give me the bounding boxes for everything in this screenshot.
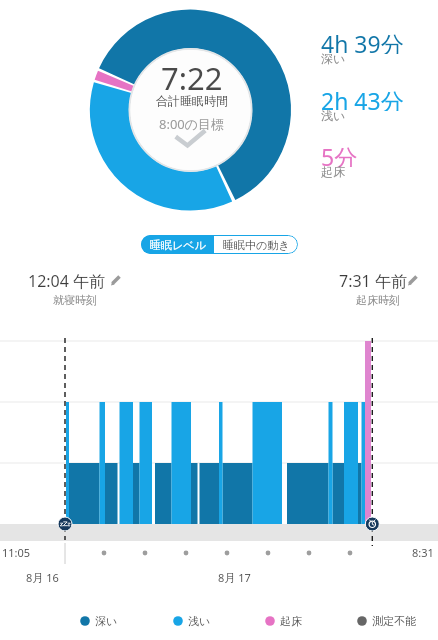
button[interactable] (335, 266, 425, 290)
staticText: 深い (321, 51, 346, 65)
staticText: 2h 43分 (321, 85, 404, 111)
staticText: 4h 39分 (321, 28, 404, 54)
staticText: 7:31 午前 (339, 270, 407, 290)
staticText: 起床 (321, 164, 345, 178)
staticText: 12:04 午前 (28, 270, 106, 290)
staticText: 7:22 (161, 57, 223, 97)
staticText: 就寝時刻 (53, 293, 97, 307)
staticText: 5分 (321, 141, 358, 167)
staticText: 8月 17 (218, 570, 251, 584)
staticText: 8月 16 (26, 570, 59, 584)
staticText: 起床時刻 (356, 293, 400, 307)
button[interactable]: 睡眠レベル (141, 235, 214, 254)
button[interactable]: 睡眠中の動き (214, 235, 298, 254)
staticText: 8:00の目標 (159, 115, 225, 133)
button[interactable] (24, 266, 126, 290)
staticText: 測定不能 (372, 614, 416, 628)
staticText: 合計睡眠時間 (156, 93, 228, 108)
staticText: 8:31 (412, 545, 434, 559)
staticText: 11:05 (2, 545, 31, 559)
staticText: 睡眠中の動き (223, 238, 290, 252)
staticText: 起床 (280, 614, 302, 628)
staticText: 睡眠レベル (150, 238, 206, 252)
staticText: 浅い (188, 614, 211, 628)
staticText: 浅い (321, 108, 346, 122)
staticText: 深い (95, 614, 118, 628)
